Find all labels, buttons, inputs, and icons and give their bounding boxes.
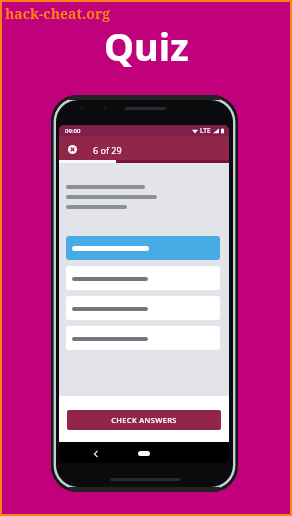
button[interactable]: Home	[138, 451, 150, 456]
staticText: hack-cheat.org	[5, 4, 111, 23]
button[interactable]: CHECK ANSWERS	[67, 410, 221, 430]
staticText: LTE	[200, 126, 211, 135]
button[interactable]	[66, 326, 220, 350]
staticText: Quiz	[104, 20, 189, 72]
button[interactable]	[66, 266, 220, 290]
button[interactable]: Back	[90, 448, 102, 460]
button[interactable]: Close	[66, 143, 79, 156]
staticText: CHECK ANSWERS	[111, 415, 177, 425]
staticText: 09:00	[65, 127, 81, 135]
button[interactable]	[66, 296, 220, 320]
button[interactable]	[66, 236, 220, 260]
staticText: 6 of 29	[93, 144, 122, 156]
